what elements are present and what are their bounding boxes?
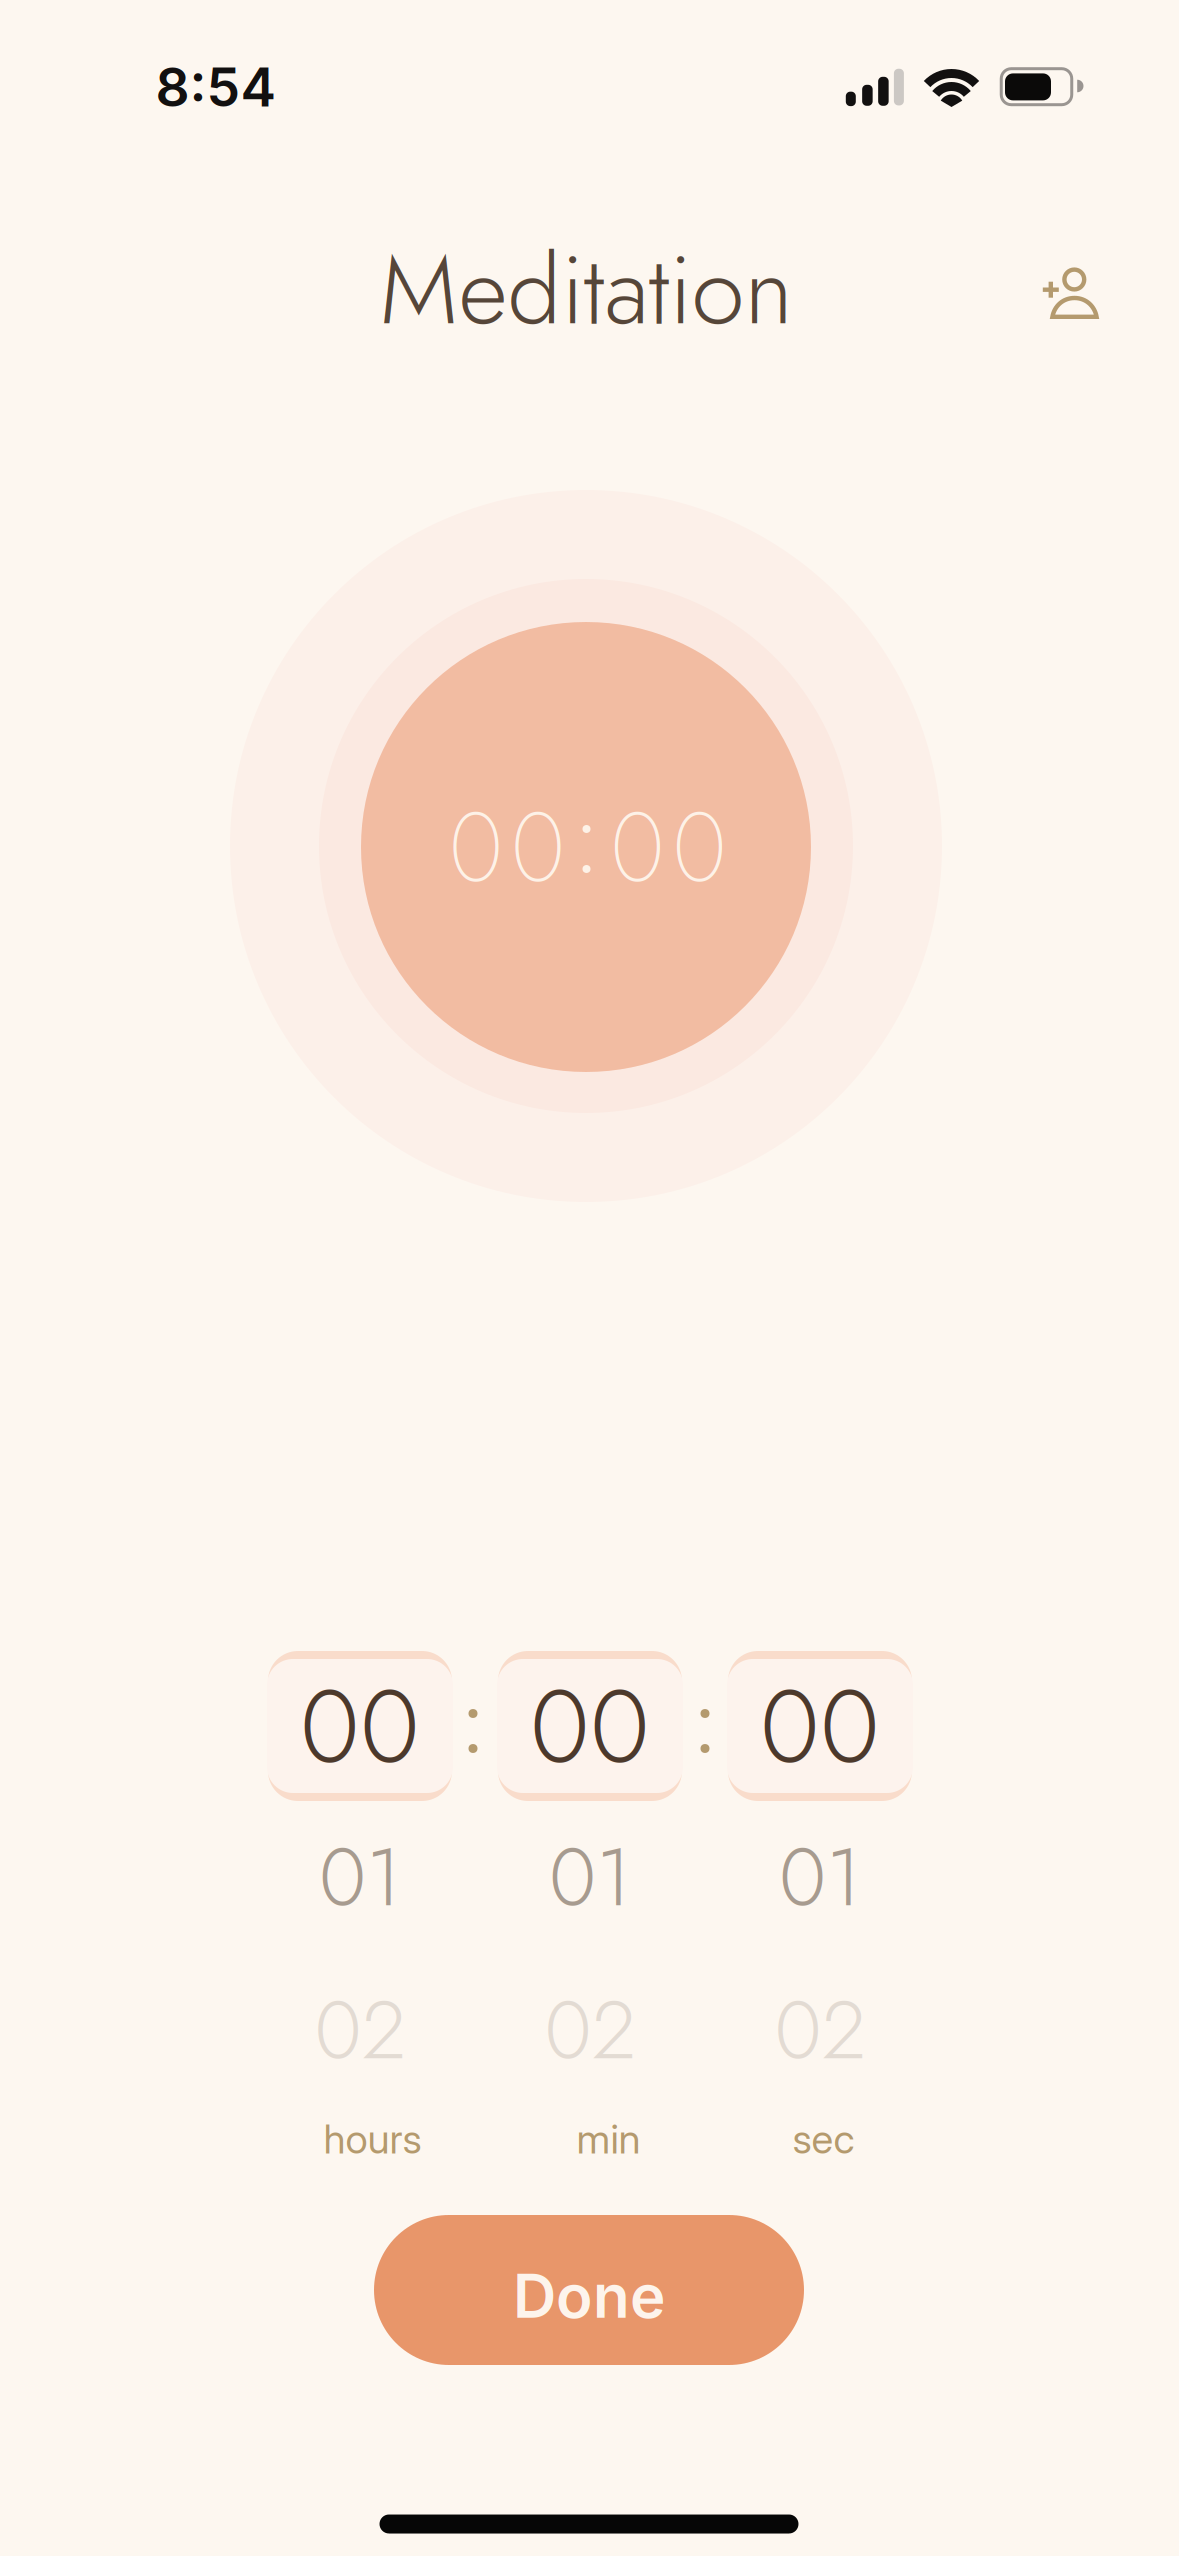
- staticText: Done: [513, 2260, 665, 2332]
- staticText: 01: [549, 1818, 631, 1936]
- staticText: 00: [530, 1652, 650, 1800]
- staticText: min: [576, 2115, 640, 2163]
- staticText: hours: [323, 2115, 421, 2163]
- staticText: 02: [774, 1971, 865, 2089]
- staticText: 8:54: [155, 55, 276, 119]
- button[interactable]: 00: [727, 1651, 913, 1801]
- staticText: 00: [760, 1652, 880, 1800]
- staticText: 00: [448, 777, 565, 917]
- staticText: Meditation: [379, 221, 792, 359]
- button[interactable]: 00: [267, 1651, 453, 1801]
- staticText: 01: [319, 1818, 401, 1936]
- staticText: 02: [544, 1971, 635, 2089]
- button[interactable]: Done: [374, 2215, 804, 2365]
- staticText: 00: [300, 1652, 420, 1800]
- staticText: sec: [792, 2115, 854, 2163]
- staticText: 00: [610, 777, 727, 917]
- staticText: 02: [314, 1971, 405, 2089]
- button[interactable]: Add person: [1028, 250, 1112, 334]
- button[interactable]: 00: [497, 1651, 683, 1801]
- staticText: 01: [779, 1818, 861, 1936]
